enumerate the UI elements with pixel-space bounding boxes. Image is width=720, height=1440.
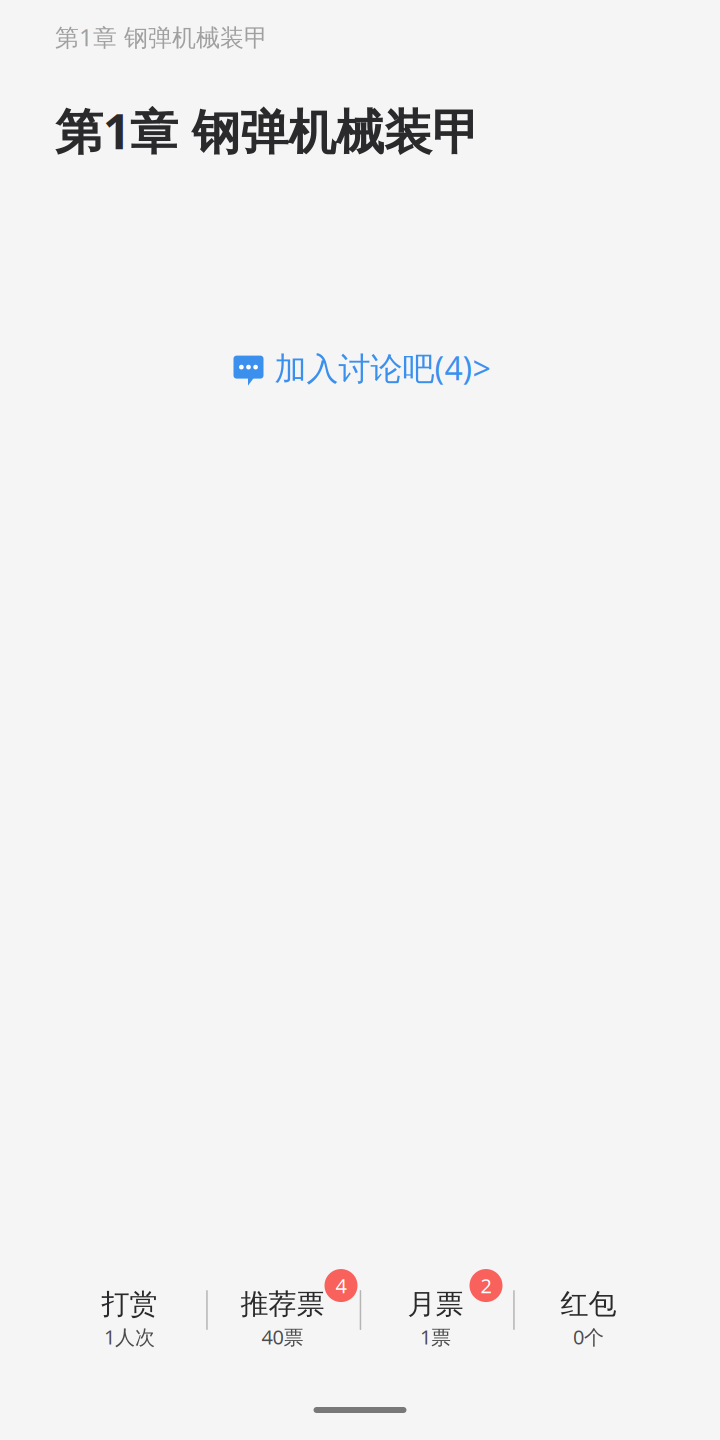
button[interactable]: 打赏 — [53, 1266, 206, 1350]
button[interactable]: 推荐票 — [206, 1266, 359, 1350]
button[interactable]: 加入讨论吧(4)> — [223, 343, 496, 393]
staticText: 月票 — [407, 1287, 463, 1321]
staticText: 4 — [335, 1272, 346, 1299]
staticText: 0个 — [573, 1323, 604, 1350]
staticText: 打赏 — [101, 1287, 157, 1321]
staticText: 第1章 钢弹机械装甲 — [55, 21, 268, 53]
staticText: 40票 — [261, 1323, 303, 1350]
staticText: 1人次 — [104, 1323, 155, 1350]
staticText: 1票 — [420, 1323, 451, 1350]
staticText: 推荐票 — [240, 1287, 324, 1321]
button[interactable]: 红包 — [512, 1266, 665, 1350]
staticText: 第1章 钢弹机械装甲 — [55, 99, 480, 163]
staticText: 加入讨论吧(4)> — [274, 347, 490, 389]
staticText: 红包 — [560, 1287, 616, 1321]
button[interactable]: 月票 — [359, 1266, 512, 1350]
staticText: 2 — [480, 1272, 491, 1299]
